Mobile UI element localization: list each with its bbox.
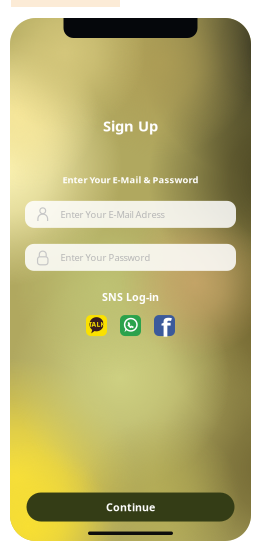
staticText: Enter Your E-Mail Adress	[60, 208, 164, 221]
staticText: Sign Up	[103, 116, 158, 135]
staticText: Enter Your Password	[60, 251, 150, 264]
button[interactable]: Enter Your E-Mail Adress	[25, 201, 236, 228]
staticText: Enter Your E-Mail & Password	[62, 173, 198, 186]
button[interactable]: Sign in with WhatsApp	[120, 315, 141, 336]
button[interactable]: Sign in with Facebook	[154, 315, 175, 336]
staticText: Continue	[106, 500, 155, 514]
staticText: TALK	[88, 320, 104, 329]
button[interactable]: Sign in with KakaoTalk	[86, 315, 107, 336]
button[interactable]: Continue	[26, 492, 234, 521]
button[interactable]: Enter Your Password	[25, 244, 236, 271]
staticText: SNS Log-in	[102, 290, 159, 304]
staticText: f	[161, 310, 171, 344]
